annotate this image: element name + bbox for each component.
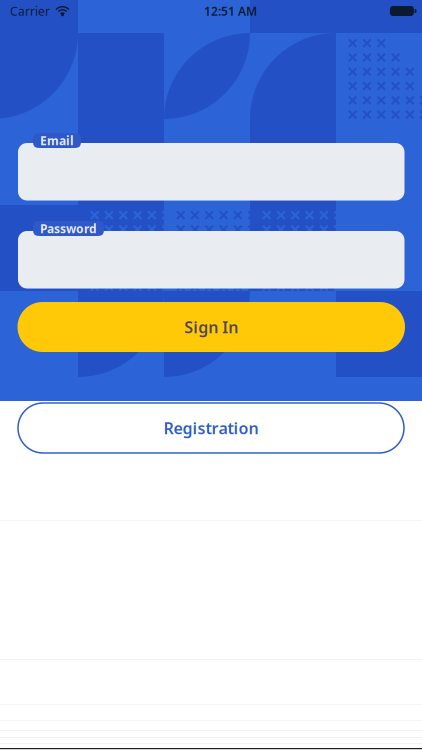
button[interactable]: Sign In bbox=[17, 302, 405, 352]
button[interactable]: Registration bbox=[18, 403, 404, 453]
staticText: Carrier bbox=[10, 3, 50, 19]
staticText: 12:51 AM bbox=[204, 3, 257, 19]
staticText: Registration bbox=[163, 417, 258, 439]
staticText: Email bbox=[40, 132, 74, 148]
staticText: Sign In bbox=[184, 316, 238, 338]
staticText: Password bbox=[40, 220, 97, 236]
